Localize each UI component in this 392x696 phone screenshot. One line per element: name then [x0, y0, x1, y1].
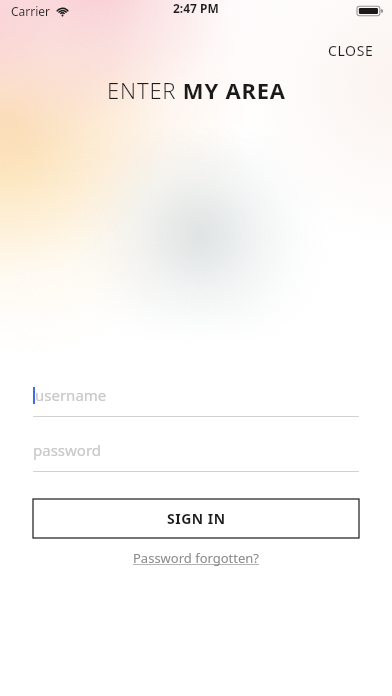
button[interactable]: Password forgotten?	[125, 546, 268, 570]
staticText: password	[33, 440, 101, 460]
staticText: SIGN IN	[167, 509, 226, 528]
staticText: username	[35, 385, 107, 405]
button[interactable]: username	[33, 381, 359, 409]
staticText: Password forgotten?	[133, 549, 260, 567]
staticText: Carrier	[11, 3, 51, 19]
button[interactable]: password	[33, 436, 359, 464]
button[interactable]: CLOSE	[310, 36, 392, 65]
staticText: 2:47 PM	[173, 0, 219, 16]
staticText: CLOSE	[328, 41, 374, 60]
staticText: ENTER MY AREA	[107, 75, 286, 105]
button[interactable]: SIGN IN	[33, 499, 359, 538]
